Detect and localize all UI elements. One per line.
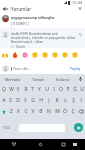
button[interactable]: V xyxy=(29,106,37,117)
button[interactable]: W xyxy=(8,84,15,95)
staticText: J xyxy=(48,97,50,104)
staticText: S xyxy=(9,97,12,104)
staticText: I xyxy=(80,97,82,104)
button[interactable]: R xyxy=(22,84,29,95)
button[interactable]: U xyxy=(43,84,50,95)
button[interactable]: Ç xyxy=(69,106,77,117)
button[interactable]: Home xyxy=(35,139,46,150)
button[interactable]: Voice input xyxy=(76,74,85,84)
button[interactable]: Like xyxy=(77,31,83,37)
button[interactable]: Emoji 1 xyxy=(11,51,18,58)
staticText: [ 8 SDWFC ] xyxy=(11,21,30,26)
staticText: . xyxy=(67,125,69,130)
button[interactable]: Comma xyxy=(13,119,19,136)
staticText: T xyxy=(31,86,34,93)
staticText: R xyxy=(24,86,28,93)
staticText: 10:44 xyxy=(72,0,83,5)
button[interactable]: ?123 xyxy=(0,119,13,136)
button[interactable]: Shift xyxy=(0,106,8,117)
staticText: H xyxy=(39,97,43,104)
button[interactable]: I xyxy=(50,84,57,95)
staticText: P xyxy=(66,86,70,93)
staticText: O xyxy=(59,86,63,93)
button[interactable]: Q xyxy=(0,84,8,95)
staticText: 1s xyxy=(11,27,14,28)
button[interactable]: Y xyxy=(36,84,43,95)
button[interactable]: Paylaş xyxy=(68,65,83,72)
staticText: Ü xyxy=(80,86,84,93)
button[interactable]: S xyxy=(7,95,14,106)
staticText: Merhaba xyxy=(5,77,21,82)
button[interactable]: Filter xyxy=(74,5,85,13)
button[interactable]: C xyxy=(22,106,29,117)
button[interactable]: Z xyxy=(8,106,15,117)
button[interactable]: K xyxy=(53,95,61,106)
button[interactable]: H xyxy=(37,95,45,106)
staticText: Yanıtla xyxy=(16,45,26,48)
button[interactable]: Ğ xyxy=(71,84,78,95)
staticText: G xyxy=(31,97,35,104)
button[interactable]: Kullanıcı xyxy=(51,74,76,84)
staticText: Q xyxy=(2,86,6,93)
button[interactable]: Ü xyxy=(78,84,85,95)
staticText: Ş xyxy=(72,97,75,104)
staticText: N xyxy=(47,108,51,115)
staticText: A xyxy=(2,97,6,104)
button[interactable]: Emoji 5 xyxy=(51,51,58,58)
button[interactable]: T xyxy=(29,84,36,95)
staticText: M xyxy=(55,108,60,115)
staticText: Kullanıcı xyxy=(56,77,71,82)
button[interactable]: Back xyxy=(0,5,11,13)
button[interactable]: E xyxy=(15,84,22,95)
button[interactable]: O xyxy=(57,84,64,95)
button[interactable]: D xyxy=(14,95,21,106)
staticText: dodle9999 Bunaltmaktan pek hoşlanılmaz, … xyxy=(11,31,76,44)
button[interactable]: Emoji 4 xyxy=(41,51,48,58)
button[interactable]: Emoji 6 xyxy=(61,51,68,58)
button[interactable]: Backspace xyxy=(77,106,85,117)
staticText: ?123 xyxy=(3,126,10,130)
button[interactable]: F xyxy=(21,95,29,106)
button[interactable]: I xyxy=(77,95,85,106)
button[interactable]: Ö xyxy=(61,106,69,117)
staticText: V xyxy=(31,108,35,115)
staticText: , xyxy=(15,125,17,130)
button[interactable]: P xyxy=(64,84,71,95)
staticText: X xyxy=(17,108,20,115)
staticText: Yanıt ekle... xyxy=(13,66,31,71)
staticText: D xyxy=(16,97,20,104)
staticText: Y xyxy=(38,86,41,93)
button[interactable]: Hide keyboard xyxy=(8,139,19,150)
button[interactable]: M xyxy=(53,106,61,117)
button[interactable]: Send xyxy=(71,119,85,136)
button[interactable]: L xyxy=(61,95,69,106)
button[interactable]: G xyxy=(29,95,37,106)
button[interactable]: Recents xyxy=(58,139,69,150)
button[interactable]: N xyxy=(45,106,53,117)
staticText: 1s xyxy=(11,45,14,48)
button[interactable]: mypypmasomp sdfwegfw xyxy=(0,13,85,28)
button[interactable]: X xyxy=(15,106,22,117)
staticText: B xyxy=(39,108,43,115)
staticText: Paylaş xyxy=(70,66,81,71)
staticText: I xyxy=(53,86,55,93)
button[interactable]: Switch keyboard xyxy=(69,139,80,150)
staticText: Yorumlar xyxy=(11,6,32,12)
staticText: mypypmasomp sdfwegfw xyxy=(11,15,55,20)
button[interactable]: Emoji 3 xyxy=(31,51,38,58)
button[interactable]: Emoji 7 xyxy=(71,51,78,58)
button[interactable]: Tamam xyxy=(26,74,51,84)
button[interactable]: dodle9999 Bunaltmaktan pek hoşlanılmaz, … xyxy=(0,28,85,48)
button[interactable]: B xyxy=(37,106,45,117)
staticText: W xyxy=(9,86,14,93)
button[interactable]: Ş xyxy=(69,95,77,106)
staticText: F xyxy=(24,97,27,104)
button[interactable]: Emoji 2 xyxy=(21,51,28,58)
button[interactable]: Merhaba xyxy=(0,74,26,84)
button[interactable]: Emoji 0 xyxy=(1,51,8,58)
button[interactable]: A xyxy=(0,95,7,106)
staticText: Ö xyxy=(63,108,67,115)
button[interactable]: J xyxy=(45,95,53,106)
